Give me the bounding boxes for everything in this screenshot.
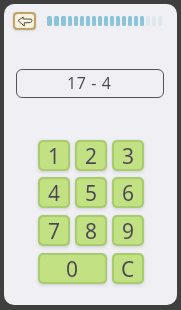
- button[interactable]: 9: [114, 217, 142, 244]
- staticText: 7: [48, 217, 61, 244]
- staticText: 4: [48, 179, 61, 206]
- staticText: 8: [85, 217, 98, 244]
- button[interactable]: 1: [40, 142, 68, 169]
- button[interactable]: 6: [114, 179, 142, 206]
- staticText: 5: [85, 179, 98, 206]
- staticText: 0: [66, 255, 79, 282]
- staticText: 17 - 4: [67, 72, 112, 94]
- button[interactable]: C: [114, 255, 142, 282]
- button[interactable]: 2: [77, 142, 105, 169]
- staticText: 9: [122, 217, 135, 244]
- button[interactable]: Back: [15, 14, 34, 28]
- staticText: C: [121, 255, 135, 282]
- button[interactable]: 0: [40, 255, 105, 282]
- button[interactable]: 5: [77, 179, 105, 206]
- staticText: 6: [122, 179, 135, 206]
- staticText: 1: [48, 142, 61, 169]
- staticText: 2: [85, 142, 98, 169]
- button[interactable]: 4: [40, 179, 68, 206]
- staticText: 3: [122, 142, 135, 169]
- button[interactable]: 3: [114, 142, 142, 169]
- button[interactable]: 7: [40, 217, 68, 244]
- button[interactable]: 8: [77, 217, 105, 244]
